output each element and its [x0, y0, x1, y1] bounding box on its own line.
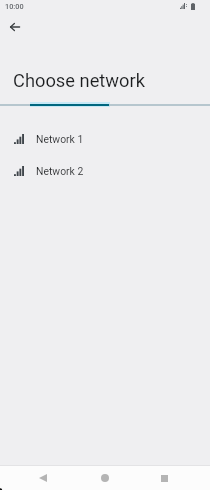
staticText: Network 2 [36, 165, 84, 177]
button[interactable]: Network 2 [0, 155, 210, 187]
staticText: Choose network [13, 70, 145, 91]
staticText: 10:00 [5, 2, 24, 11]
button[interactable]: Home [92, 466, 117, 490]
button[interactable]: Back [2, 14, 27, 39]
button[interactable]: Back [30, 466, 55, 490]
button[interactable]: Network 1 [0, 123, 210, 155]
button[interactable]: Recents [152, 466, 177, 490]
staticText: Network 1 [36, 133, 84, 145]
